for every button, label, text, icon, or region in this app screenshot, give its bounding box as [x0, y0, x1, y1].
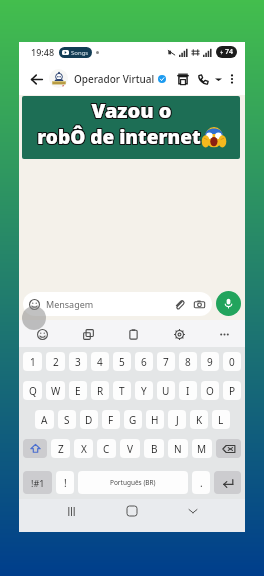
- button[interactable]: Enter: [214, 471, 241, 494]
- button[interactable]: Shift: [23, 439, 47, 458]
- staticText: robÔ de internet: [38, 123, 202, 149]
- button[interactable]: 2: [46, 352, 65, 371]
- staticText: Y: [141, 384, 147, 398]
- button[interactable]: 7: [157, 352, 175, 371]
- button[interactable]: Back: [184, 502, 202, 520]
- staticText: E: [75, 384, 81, 398]
- button[interactable]: Emoji: [33, 325, 51, 343]
- button[interactable]: 5: [113, 352, 131, 371]
- staticText: Q: [29, 384, 37, 398]
- staticText: F: [108, 413, 114, 427]
- button[interactable]: O: [201, 381, 219, 400]
- button[interactable]: Business catalog: [173, 69, 193, 89]
- staticText: robÔ de internet: [37, 123, 201, 149]
- button[interactable]: D: [80, 410, 98, 429]
- staticText: !#1: [31, 477, 45, 489]
- button[interactable]: Y: [135, 381, 153, 400]
- button[interactable]: Recent apps: [62, 502, 80, 520]
- button[interactable]: K: [190, 410, 208, 429]
- staticText: 2: [53, 355, 59, 369]
- button[interactable]: R: [91, 381, 109, 400]
- staticText: R: [97, 384, 104, 398]
- staticText: Português (BR): [110, 478, 156, 487]
- button[interactable]: 1: [23, 352, 42, 371]
- button[interactable]: 3: [69, 352, 87, 371]
- button[interactable]: P: [223, 381, 241, 400]
- staticText: !: [64, 476, 67, 490]
- staticText: 4: [97, 355, 103, 369]
- button[interactable]: Call: [193, 69, 213, 89]
- staticText: 0: [229, 355, 235, 369]
- button[interactable]: .: [192, 471, 210, 494]
- staticText: X: [81, 442, 87, 456]
- button[interactable]: N: [168, 439, 188, 458]
- button[interactable]: H: [146, 410, 164, 429]
- button[interactable]: !: [56, 471, 74, 494]
- button[interactable]: Z: [51, 439, 70, 458]
- button[interactable]: X: [74, 439, 93, 458]
- button[interactable]: Q: [23, 381, 42, 400]
- staticText: D: [85, 413, 93, 427]
- staticText: robÔ de internet: [38, 125, 202, 151]
- button[interactable]: More: [215, 325, 233, 343]
- staticText: robÔ de internet: [37, 125, 201, 151]
- button[interactable]: W: [46, 381, 65, 400]
- staticText: 74: [225, 47, 234, 57]
- staticText: N: [174, 442, 182, 456]
- button[interactable]: More options: [223, 70, 241, 88]
- staticText: Vazou o: [92, 98, 173, 125]
- button[interactable]: Settings: [170, 325, 188, 343]
- button[interactable]: Back: [25, 68, 47, 90]
- button[interactable]: Clipboard: [124, 325, 142, 343]
- button[interactable]: Stickers: [79, 325, 97, 343]
- staticText: .: [200, 476, 203, 490]
- button[interactable]: 9: [201, 352, 219, 371]
- button[interactable]: !#1: [23, 471, 52, 494]
- button[interactable]: G: [124, 410, 142, 429]
- button[interactable]: B: [144, 439, 164, 458]
- staticText: 8: [185, 355, 191, 369]
- staticText: Vazou o: [90, 97, 171, 124]
- staticText: 6: [141, 355, 147, 369]
- staticText: Vazou o: [91, 96, 172, 123]
- staticText: S: [64, 413, 70, 427]
- staticText: Mensagem: [46, 298, 94, 310]
- staticText: W: [51, 384, 61, 398]
- button[interactable]: Backspace: [216, 439, 241, 458]
- staticText: T: [119, 384, 125, 398]
- button[interactable]: E: [69, 381, 87, 400]
- staticText: 3: [75, 355, 81, 369]
- staticText: robÔ de internet: [36, 125, 200, 151]
- staticText: Z: [58, 442, 64, 456]
- staticText: H: [151, 413, 159, 427]
- staticText: V: [127, 442, 133, 456]
- button[interactable]: F: [102, 410, 120, 429]
- button[interactable]: L: [212, 410, 230, 429]
- button[interactable]: M: [192, 439, 212, 458]
- button[interactable]: 4: [91, 352, 109, 371]
- button[interactable]: 8: [179, 352, 197, 371]
- button[interactable]: U: [157, 381, 175, 400]
- button[interactable]: I: [179, 381, 197, 400]
- staticText: 5: [119, 355, 125, 369]
- button[interactable]: A: [35, 410, 54, 429]
- staticText: Vazou o: [90, 96, 171, 123]
- button[interactable]: Record voice message: [216, 291, 241, 316]
- button[interactable]: V: [120, 439, 140, 458]
- button[interactable]: Home: [123, 502, 141, 520]
- button[interactable]: 0: [223, 352, 241, 371]
- staticText: Vazou o: [92, 96, 173, 123]
- button[interactable]: 6: [135, 352, 153, 371]
- staticText: J: [176, 413, 179, 427]
- staticText: Vazou o: [91, 98, 172, 125]
- button[interactable]: S: [58, 410, 76, 429]
- button[interactable]: T: [113, 381, 131, 400]
- button[interactable]: Mensagem: [23, 292, 212, 316]
- staticText: A: [41, 413, 48, 427]
- button[interactable]: Português (BR): [78, 471, 188, 494]
- staticText: M: [197, 442, 207, 456]
- button[interactable]: J: [168, 410, 186, 429]
- staticText: Vazou o: [90, 98, 171, 125]
- button[interactable]: C: [97, 439, 116, 458]
- button[interactable]: Call options: [213, 74, 223, 84]
